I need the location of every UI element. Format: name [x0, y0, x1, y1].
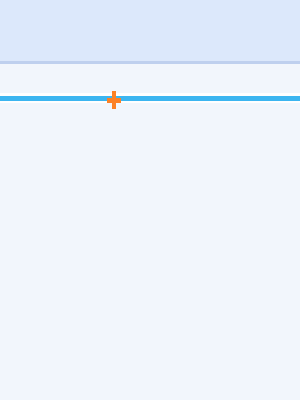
button[interactable]: Add marker: [105, 89, 123, 111]
